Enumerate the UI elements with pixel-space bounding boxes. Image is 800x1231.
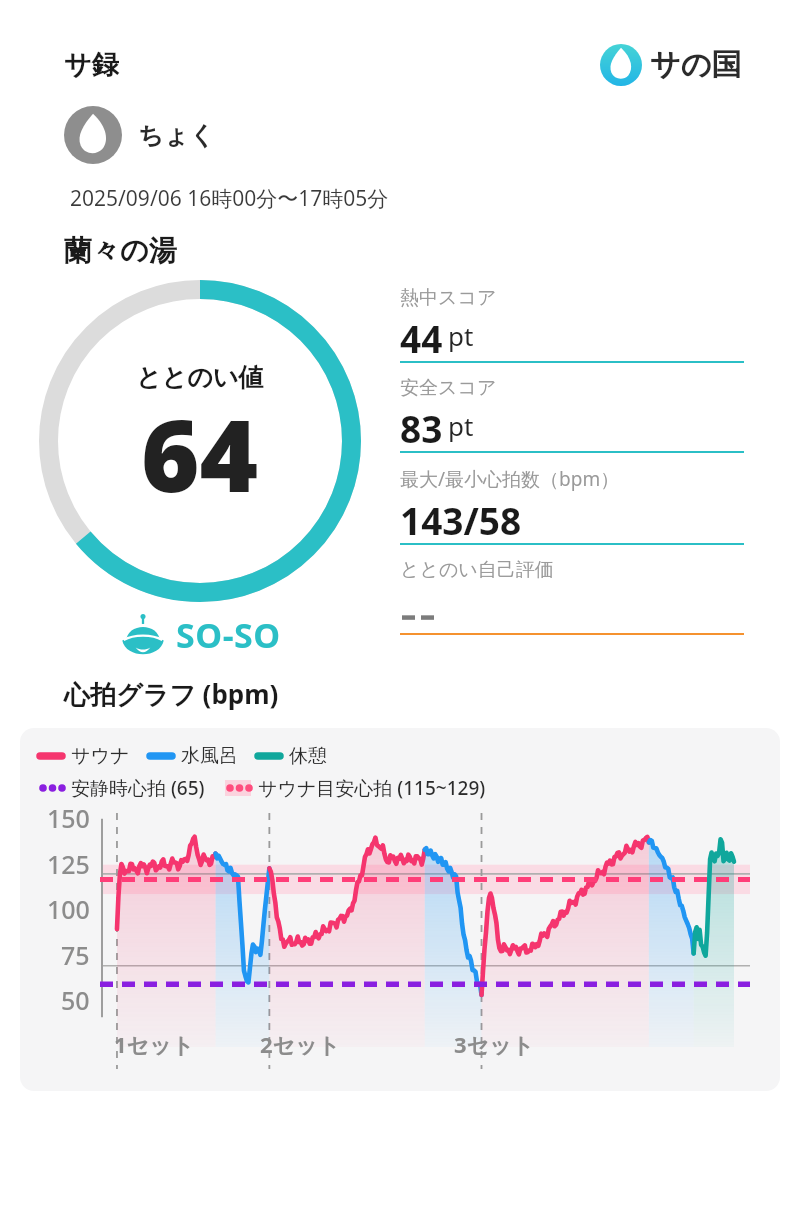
button[interactable]: ちょく — [64, 106, 215, 164]
staticText: 44 — [400, 313, 443, 357]
staticText: サウナ目安心拍 (115~129) — [258, 775, 486, 801]
button[interactable]: 最大/最小心拍数（bpm） — [400, 466, 744, 558]
staticText: 安全スコア — [400, 376, 497, 400]
staticText: 100 — [47, 892, 90, 926]
staticText: pt — [448, 408, 474, 443]
staticText: pt — [448, 318, 474, 353]
staticText: 150 — [47, 801, 90, 835]
staticText: サ録 — [64, 48, 119, 82]
staticText: 3セット — [454, 1029, 535, 1059]
staticText: ちょく — [138, 120, 215, 151]
staticText: 熱中スコア — [400, 286, 497, 310]
other: SO-SO rating — [120, 612, 166, 658]
button[interactable]: 熱中スコア — [400, 286, 744, 376]
staticText: 2025/09/06 16時00分〜17時05分 — [70, 184, 389, 213]
staticText: 50 — [61, 983, 90, 1017]
staticText: 蘭々の湯 — [64, 233, 177, 268]
staticText: 水風呂 — [181, 744, 238, 768]
staticText: 64 — [141, 385, 259, 521]
staticText: ととのい値 — [136, 362, 264, 393]
staticText: 休憩 — [289, 744, 327, 768]
staticText: ととのい自己評価 — [400, 558, 554, 582]
staticText: 143/58 — [400, 495, 522, 539]
staticText: 1セット — [114, 1029, 195, 1059]
staticText: 最大/最小心拍数（bpm） — [400, 466, 620, 492]
staticText: 心拍グラフ (bpm) — [64, 676, 279, 712]
staticText: 安静時心拍 (65) — [71, 775, 205, 801]
staticText: 83 — [400, 403, 443, 447]
staticText: 75 — [61, 938, 90, 972]
button[interactable]: ととのい自己評価 — [400, 558, 744, 648]
staticText: 125 — [47, 847, 90, 881]
staticText: サウナ — [71, 744, 130, 768]
button[interactable]: サの国 — [600, 44, 742, 86]
staticText: 2セット — [260, 1029, 341, 1059]
staticText: サの国 — [650, 46, 742, 84]
staticText: SO-SO — [176, 612, 281, 658]
button[interactable]: SO-SO rating — [120, 612, 281, 658]
button[interactable]: 安全スコア — [400, 376, 744, 466]
